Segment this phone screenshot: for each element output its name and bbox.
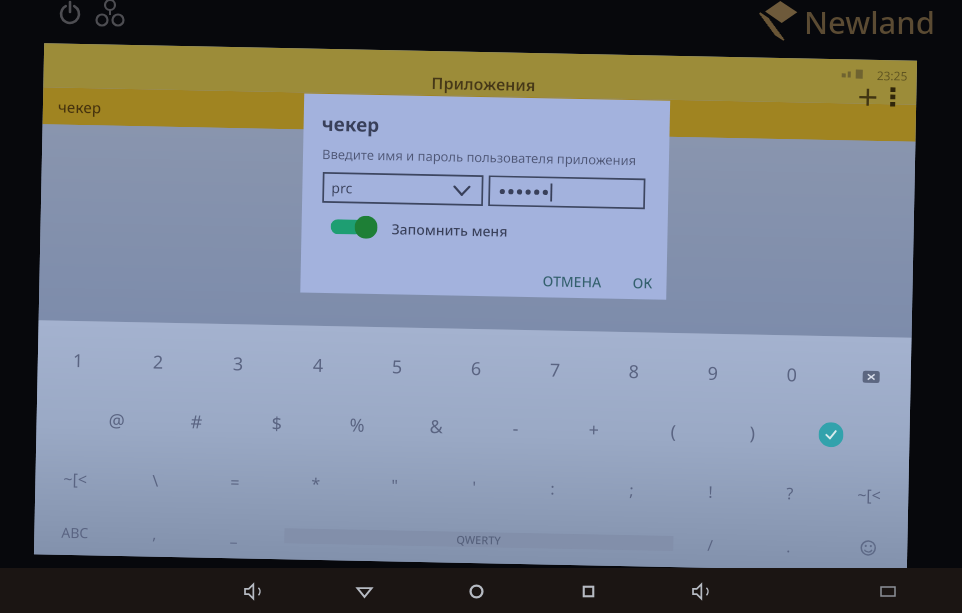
staticText: ! (708, 481, 713, 503)
staticText: 9 (707, 361, 719, 386)
staticText: QWERTY (456, 532, 501, 548)
button[interactable]: 5 (357, 337, 437, 397)
button[interactable]: = (195, 451, 276, 512)
staticText: ; (629, 479, 634, 501)
button[interactable]: ; (592, 459, 672, 520)
staticText: ( (670, 419, 677, 444)
staticText: чекер (321, 111, 380, 138)
staticText: ) (749, 420, 756, 446)
button[interactable]: $ (236, 393, 317, 454)
button[interactable]: ? (750, 463, 830, 523)
button[interactable]: , (114, 510, 195, 557)
staticText: Введите имя и пароль пользователя прилож… (322, 145, 637, 169)
button[interactable]: ' (434, 456, 514, 517)
button[interactable]: Add (849, 78, 886, 115)
staticText: @ (108, 408, 126, 433)
staticText: 0 (786, 362, 798, 387)
button[interactable]: / (670, 521, 750, 569)
button[interactable]: 1 (37, 330, 118, 391)
button[interactable]: Enter (791, 404, 871, 465)
staticText: 8 (628, 359, 640, 384)
staticText: ОК (632, 273, 653, 292)
button[interactable]: Volume up (682, 573, 718, 609)
staticText: $ (271, 411, 283, 436)
staticText: чекер (58, 97, 102, 117)
button[interactable]: Backspace (831, 346, 911, 407)
staticText: 4 (313, 353, 324, 378)
staticText: ~[< (63, 468, 88, 490)
staticText: ' (472, 476, 477, 498)
button[interactable]: " (355, 455, 435, 515)
staticText: _ (230, 525, 238, 545)
button[interactable]: ABC (34, 508, 115, 556)
staticText: . (786, 536, 791, 556)
staticText: ~[< (857, 484, 881, 506)
staticText: 6 (470, 356, 482, 381)
staticText: Приложения (431, 72, 536, 96)
staticText: * (311, 473, 321, 495)
staticText: 5 (391, 354, 403, 379)
button[interactable]: 4 (277, 335, 358, 396)
button[interactable]: ~[< (829, 464, 909, 525)
button[interactable]: 7 (515, 340, 595, 400)
button[interactable]: 0 (752, 345, 832, 405)
button[interactable]: * (275, 453, 356, 514)
button[interactable]: ОТМЕНА (536, 265, 608, 298)
staticText: # (190, 409, 203, 434)
button[interactable]: Password (489, 176, 645, 208)
button[interactable]: @ (76, 390, 157, 451)
button[interactable]: Recents (570, 573, 606, 609)
button[interactable]: Keyboard (874, 577, 902, 605)
button[interactable]: Home (458, 573, 494, 609)
button[interactable]: ! (671, 461, 751, 522)
staticText: \ (152, 470, 159, 492)
button[interactable]: & (396, 396, 476, 457)
button[interactable]: User name (323, 173, 483, 205)
staticText: 7 (549, 357, 561, 383)
button[interactable]: ( (633, 401, 713, 462)
staticText: % (349, 412, 365, 438)
button[interactable]: % (316, 395, 397, 455)
button[interactable]: ОК (626, 267, 659, 299)
button[interactable]: _ (194, 511, 274, 559)
staticText: ABC (61, 523, 89, 542)
button[interactable]: Back (346, 573, 382, 609)
staticText: = (230, 471, 241, 493)
staticText: 2 (153, 349, 164, 375)
button[interactable]: \ (115, 450, 196, 510)
staticText: , (152, 524, 158, 544)
button[interactable]: Volume down (234, 573, 270, 609)
button[interactable]: # (156, 392, 237, 452)
button[interactable]: ~[< (35, 448, 116, 509)
staticText: / (707, 535, 713, 555)
staticText: ? (786, 482, 793, 504)
button[interactable]: 2 (117, 332, 198, 392)
staticText: ОТМЕНА (542, 271, 602, 291)
button[interactable]: + (554, 400, 634, 460)
staticText: 3 (233, 351, 244, 376)
button[interactable]: 8 (594, 341, 674, 402)
staticText: + (588, 417, 600, 442)
staticText: prc (331, 178, 353, 197)
staticText: : (550, 477, 556, 500)
button[interactable]: Запомнить меня (319, 212, 508, 246)
staticText: & (429, 414, 444, 439)
button[interactable]: . (749, 522, 829, 570)
button[interactable]: More options (877, 81, 908, 112)
staticText: " (391, 474, 399, 496)
button[interactable]: ) (712, 403, 792, 463)
staticText: - (512, 416, 519, 441)
button[interactable]: Emoji (828, 524, 908, 572)
staticText: 23:25 (877, 67, 908, 84)
button[interactable]: 9 (673, 343, 753, 404)
button[interactable]: 6 (436, 338, 516, 399)
button[interactable]: 3 (197, 333, 278, 394)
staticText: Newland (804, 1, 936, 43)
button[interactable]: Space (273, 513, 671, 567)
button[interactable]: : (513, 458, 593, 518)
staticText: Запомнить меня (391, 219, 508, 241)
staticText: 1 (73, 348, 84, 373)
